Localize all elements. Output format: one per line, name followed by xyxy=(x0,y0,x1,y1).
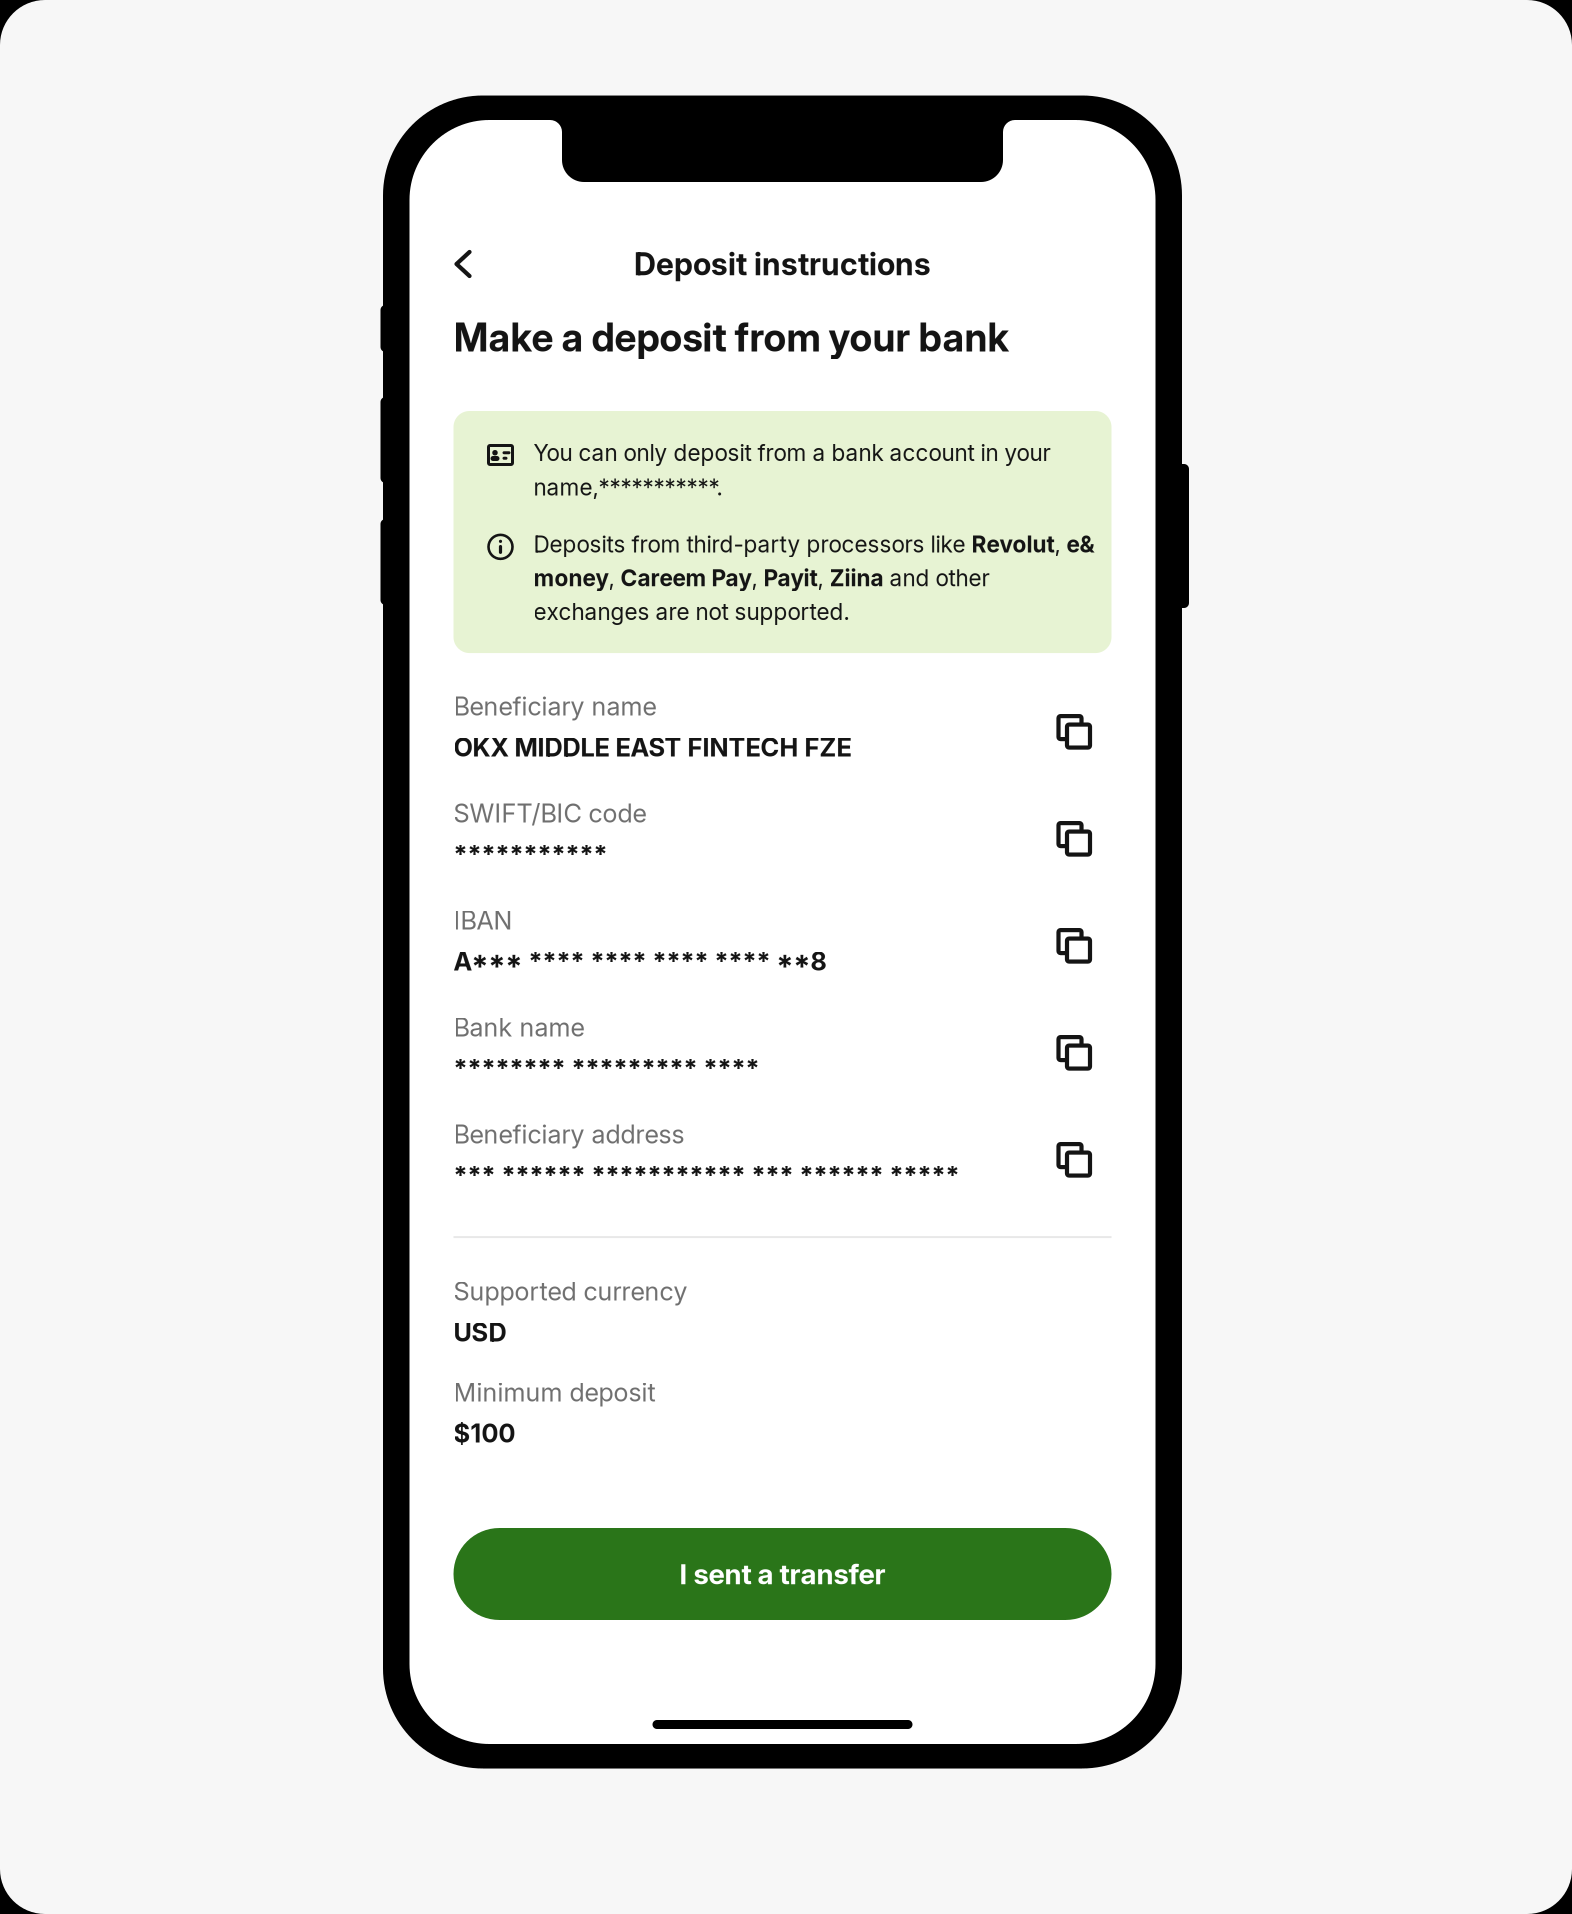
staticText: Make a deposit from your bank xyxy=(453,314,1008,361)
staticText: IBAN xyxy=(453,905,512,936)
button[interactable]: Beneficiary address xyxy=(453,1119,1111,1226)
staticText: Beneficiary name xyxy=(453,691,656,722)
staticText: Beneficiary address xyxy=(453,1119,684,1150)
staticText: ******** ********* **** xyxy=(453,1053,759,1084)
button[interactable]: Bank name xyxy=(453,1012,1111,1119)
staticText: *** ****** *********** *** ****** ***** xyxy=(453,1160,959,1191)
staticText: Supported currency xyxy=(453,1276,687,1307)
staticText: I sent a transfer xyxy=(679,1557,885,1591)
staticText: *********** xyxy=(453,839,607,870)
staticText: $100 xyxy=(453,1418,515,1449)
button[interactable]: IBAN xyxy=(453,905,1111,1012)
staticText: A*** **** **** **** **** **8 xyxy=(453,946,826,977)
staticText: USD xyxy=(453,1317,506,1348)
staticText: Deposit instructions xyxy=(634,245,931,282)
staticText: Deposits from third-party processors lik… xyxy=(533,531,1094,625)
staticText: Bank name xyxy=(453,1012,584,1043)
staticText: You can only deposit from a bank account… xyxy=(533,439,1050,501)
button[interactable]: SWIFT/BIC code xyxy=(453,798,1111,905)
staticText: Minimum deposit xyxy=(453,1377,655,1408)
button[interactable]: Back xyxy=(453,242,493,286)
button[interactable]: I sent a transfer xyxy=(453,1528,1111,1620)
staticText: SWIFT/BIC code xyxy=(453,798,646,829)
button[interactable]: Beneficiary name xyxy=(453,691,1111,798)
staticText: OKX MIDDLE EAST FINTECH FZE xyxy=(453,732,851,763)
